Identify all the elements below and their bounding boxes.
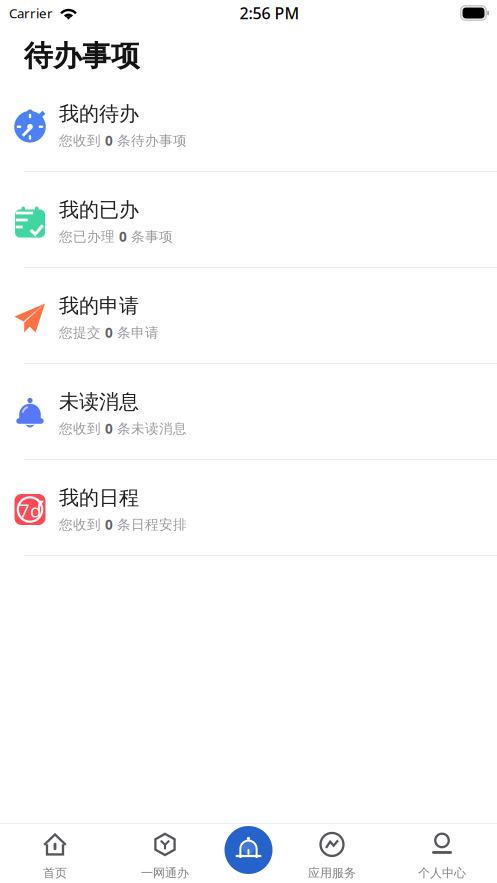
staticText: 您收到 <box>59 420 105 437</box>
staticText: 2:56 PM <box>239 2 299 24</box>
staticText: 条申请 <box>113 324 159 341</box>
staticText: 待办事项 <box>24 38 140 74</box>
staticText: 0 <box>119 227 127 246</box>
staticText: 未读消息 <box>59 389 139 414</box>
staticText: Carrier <box>9 4 53 22</box>
button[interactable]: 未读消息 <box>0 364 497 460</box>
staticText: 0 <box>105 419 113 438</box>
staticText: 7d <box>19 497 41 523</box>
button[interactable]: 消息 <box>224 826 272 874</box>
staticText: 一网通办 <box>141 865 189 880</box>
button[interactable]: 7d <box>0 460 497 556</box>
staticText: 条未读消息 <box>113 420 187 437</box>
button[interactable]: 我的已办 <box>0 172 497 268</box>
staticText: 0 <box>105 515 113 534</box>
staticText: 您已办理 <box>59 228 119 245</box>
button[interactable]: 首页 <box>0 821 110 883</box>
staticText: 我的申请 <box>59 293 139 318</box>
staticText: 条日程安排 <box>113 516 187 533</box>
staticText: 您收到 <box>59 516 105 533</box>
button[interactable]: 应用服务 <box>277 821 387 883</box>
staticText: 我的已办 <box>59 197 139 222</box>
button[interactable]: 个人中心 <box>387 821 497 883</box>
staticText: 条事项 <box>127 228 173 245</box>
staticText: 个人中心 <box>418 865 466 880</box>
staticText: 条待办事项 <box>113 132 187 149</box>
staticText: 我的待办 <box>59 101 139 126</box>
button[interactable]: 一网通办 <box>110 821 220 883</box>
staticText: 我的日程 <box>59 485 139 510</box>
button[interactable]: 我的待办 <box>0 76 497 172</box>
staticText: 您提交 <box>59 324 105 341</box>
staticText: 首页 <box>43 865 67 880</box>
staticText: 0 <box>105 131 113 150</box>
staticText: 应用服务 <box>308 865 356 880</box>
staticText: 0 <box>105 323 113 342</box>
button[interactable]: 我的申请 <box>0 268 497 364</box>
staticText: 您收到 <box>59 132 105 149</box>
